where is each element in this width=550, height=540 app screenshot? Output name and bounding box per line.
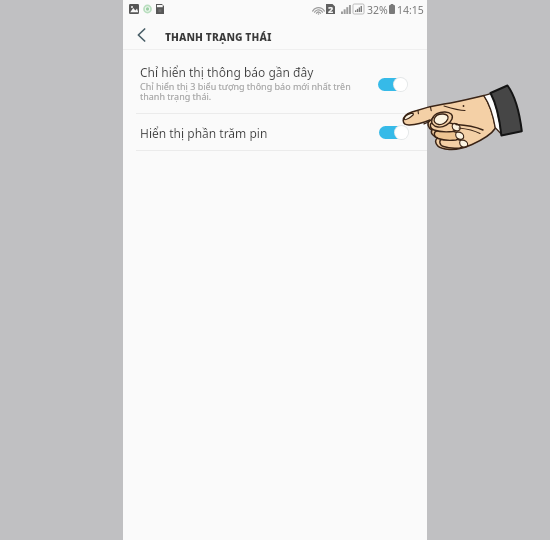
button[interactable]: Hiển thị phần trăm pin <box>123 114 427 150</box>
button[interactable]: Chỉ hiển thị thông báo gần đây <box>123 50 427 113</box>
staticText: Chỉ hiển thị thông báo gần đây <box>140 64 314 80</box>
staticText: THANH TRẠNG THÁI <box>165 30 272 44</box>
staticText: Chỉ hiển thị 3 biểu tượng thông báo mới … <box>140 80 351 102</box>
staticText: 2 <box>328 3 334 15</box>
button[interactable]: Toggle on <box>379 124 409 140</box>
staticText: 14:15 <box>397 3 424 17</box>
staticText: Hiển thị phần trăm pin <box>140 125 268 141</box>
staticText: 32% <box>367 3 388 17</box>
button[interactable]: Back <box>129 21 153 49</box>
button[interactable]: Toggle on <box>378 76 408 92</box>
